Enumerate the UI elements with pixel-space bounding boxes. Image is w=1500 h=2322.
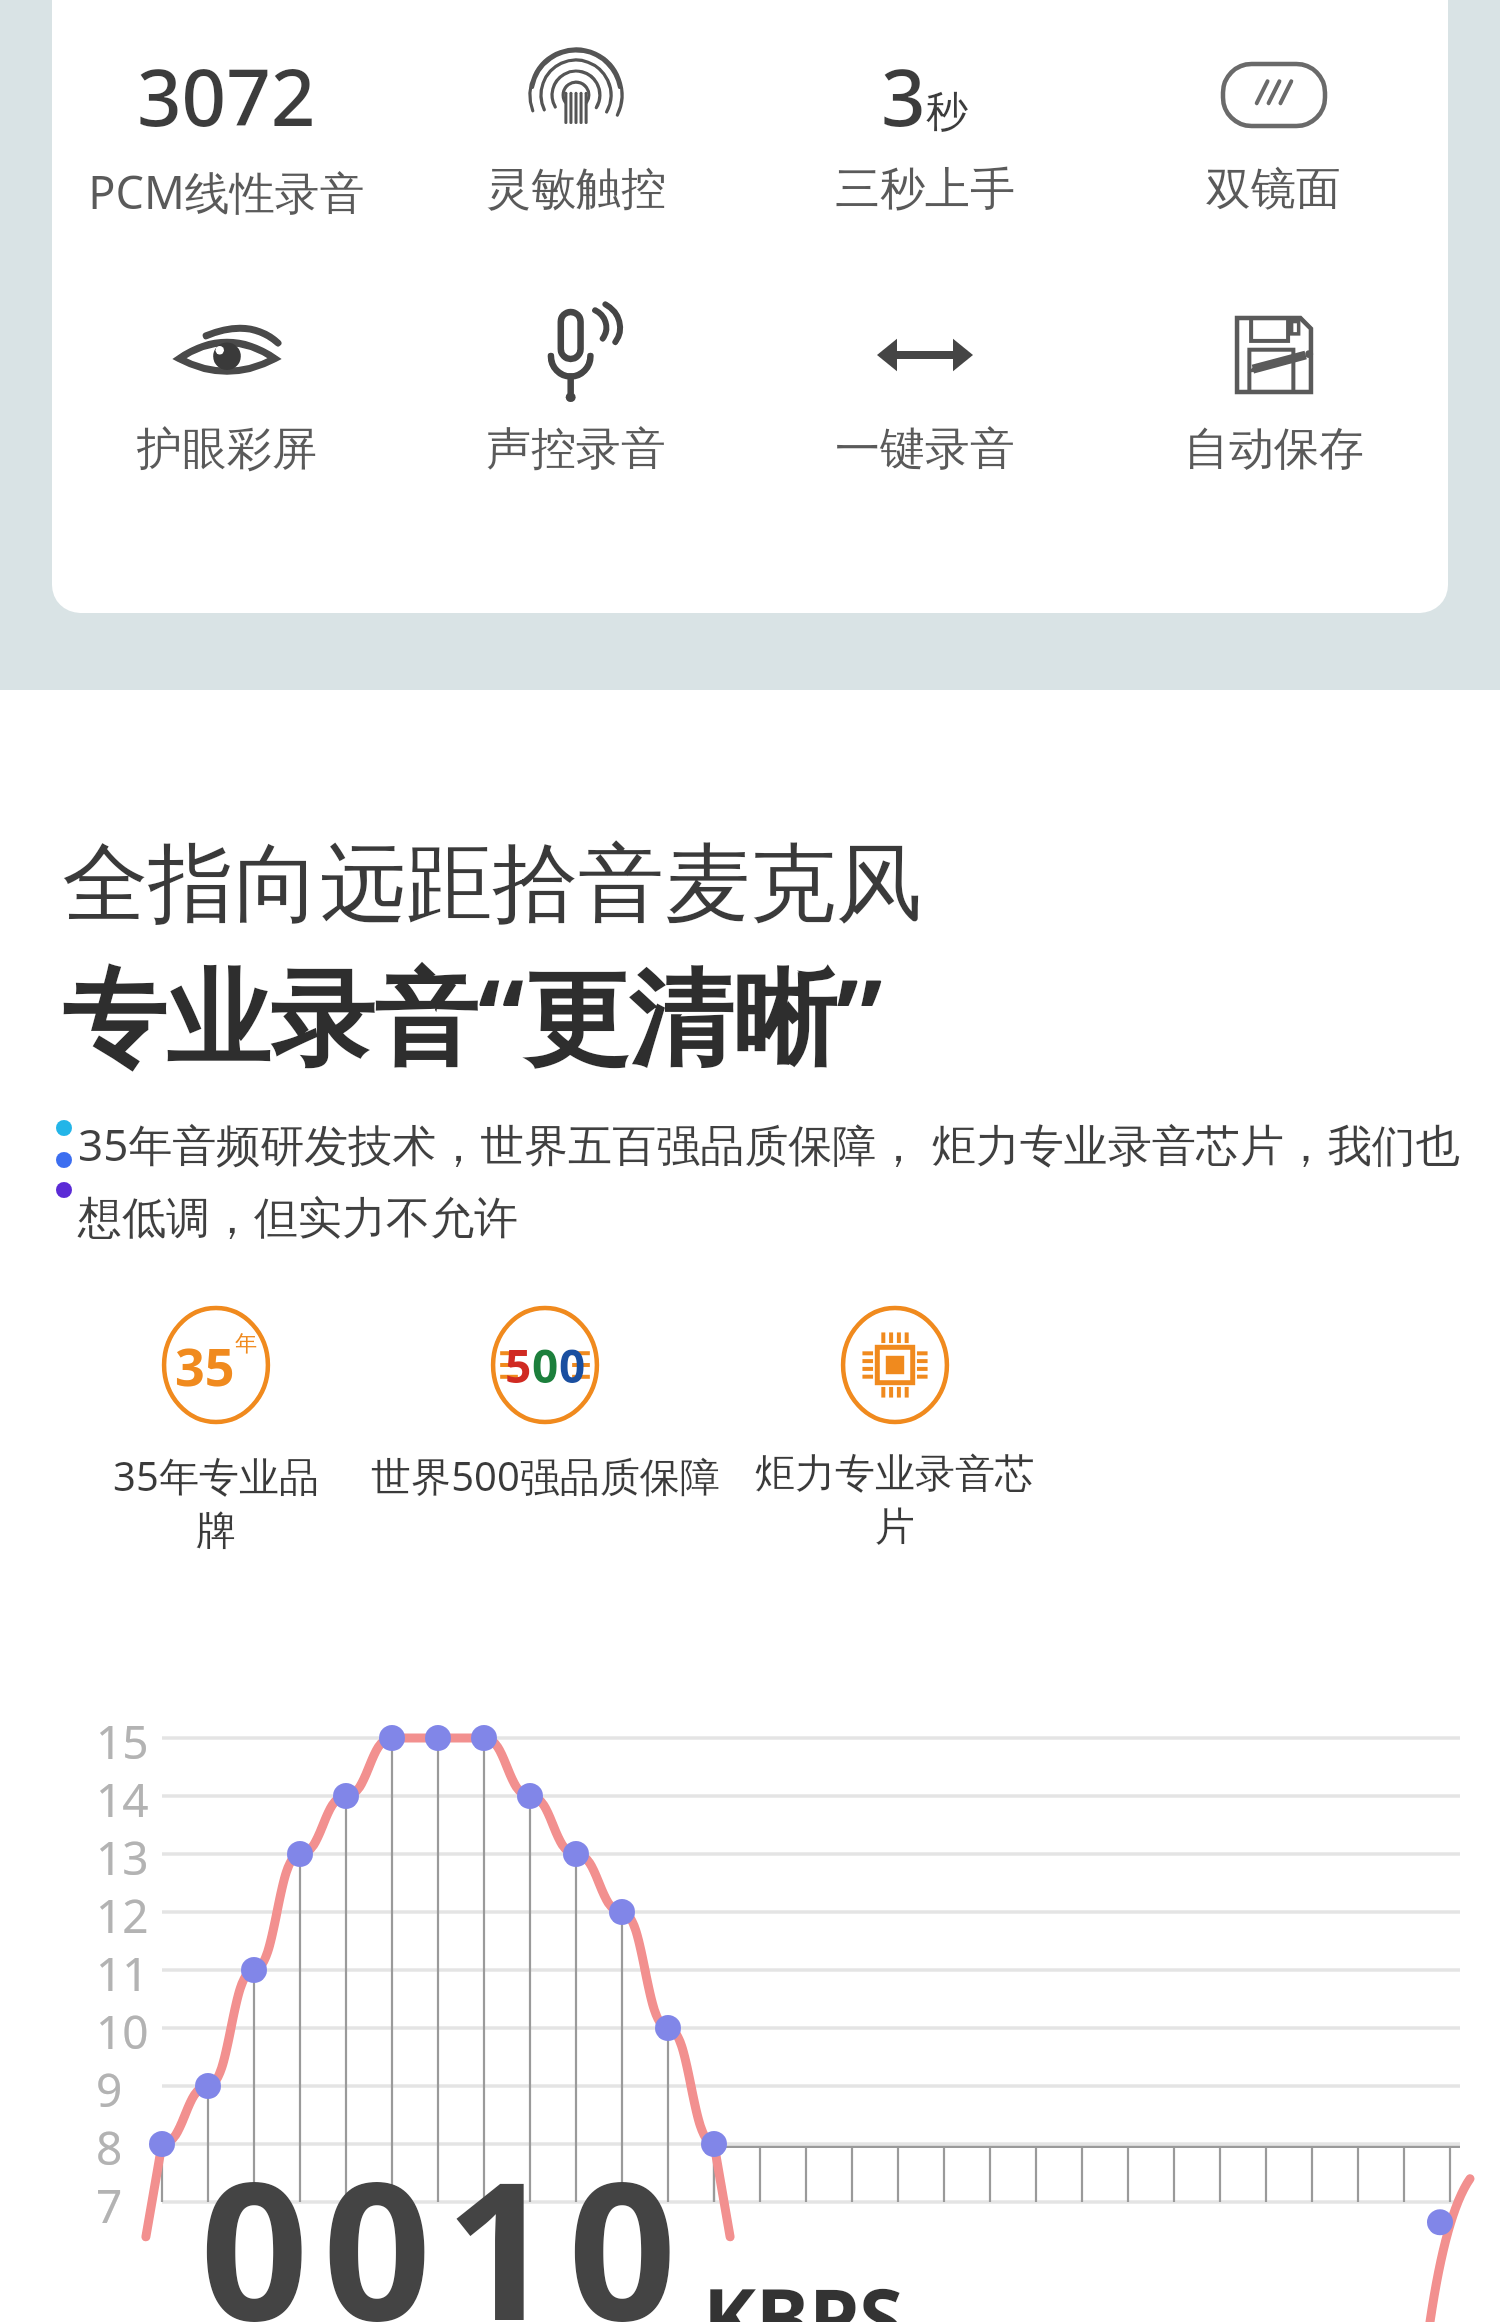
button[interactable]: 3072	[52, 43, 401, 222]
other: Fingerprint	[530, 49, 622, 141]
staticText: 双镜面	[1206, 161, 1341, 218]
staticText: 35年专业品牌	[96, 1448, 336, 1556]
staticText: 年	[235, 1330, 257, 1358]
staticText: 0	[559, 1334, 586, 1397]
staticText: 一键录音	[835, 421, 1015, 478]
staticText: 世界500强品质保障	[371, 1448, 720, 1503]
staticText: 12	[96, 1884, 149, 1942]
staticText: 灵敏触控	[486, 161, 666, 218]
staticText: 35年音频研发技术，世界五百强品质保障， 炬力专业录音芯片，我们也想低调，但实力…	[78, 1114, 1460, 1246]
staticText: 专业录音“更清晰”	[62, 944, 883, 1086]
staticText: 11	[96, 1942, 149, 2000]
staticText: 自动保存	[1184, 421, 1364, 478]
staticText: 声控录音	[486, 421, 666, 478]
staticText: 炬力专业录音芯片	[740, 1448, 1050, 1552]
staticText: 8	[96, 2116, 123, 2174]
staticText: 护眼彩屏	[137, 421, 317, 478]
button[interactable]: Eye care screen	[52, 303, 401, 478]
staticText: 三秒上手	[835, 161, 1015, 218]
button[interactable]: One touch recording	[750, 303, 1099, 478]
staticText: 0010	[200, 2117, 691, 2322]
staticText: 3	[881, 43, 926, 147]
staticText: 15	[96, 1710, 149, 1768]
button[interactable]: 3	[750, 43, 1099, 218]
staticText: 35	[175, 1330, 235, 1401]
other: Eye care screen	[175, 325, 279, 385]
button[interactable]: 5	[370, 1306, 720, 1503]
staticText: 14	[96, 1768, 149, 1826]
staticText: 10	[96, 2000, 149, 2058]
button[interactable]: Fingerprint	[401, 43, 750, 218]
staticText: 7	[96, 2174, 123, 2232]
button[interactable]: Dual mirror	[1099, 43, 1448, 218]
staticText: KBPS	[703, 2261, 904, 2322]
staticText: 13	[96, 1826, 149, 1884]
other: Voice activated recording	[538, 306, 614, 404]
staticText: 3072	[137, 43, 316, 147]
staticText: 秒	[926, 86, 968, 139]
staticText: PCM线性录音	[88, 161, 365, 222]
staticText: 0	[532, 1334, 559, 1397]
button[interactable]: 炬力专业录音芯片	[740, 1306, 1050, 1552]
other: Dual mirror	[1220, 61, 1328, 129]
button[interactable]: Auto save	[1099, 303, 1448, 478]
staticText: 5	[505, 1334, 532, 1397]
staticText: 全指向远距拾音麦克风	[62, 830, 922, 938]
other: Auto save	[1230, 311, 1318, 399]
staticText: 9	[96, 2058, 123, 2116]
button[interactable]: Voice activated recording	[401, 303, 750, 478]
other: One touch recording	[875, 331, 975, 379]
button[interactable]: 35	[96, 1306, 336, 1556]
